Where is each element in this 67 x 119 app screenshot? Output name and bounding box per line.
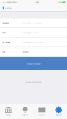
- button[interactable]: Oficinas: [0, 103, 17, 119]
- staticText: Ajustes: [56, 114, 62, 116]
- button[interactable]: Ajustes: [50, 103, 67, 119]
- staticText: Introduce tu usuario: [22, 22, 41, 24]
- staticText: ••••• Vodafone ES: [2, 1, 17, 3]
- staticText: Cajeros: [22, 114, 28, 116]
- button[interactable]: Cajeros: [17, 103, 34, 119]
- button[interactable]: Usuario: [0, 18, 67, 28]
- staticText: PIN: [2, 31, 5, 34]
- staticText: País: [2, 50, 5, 53]
- staticText: Usuario: [2, 22, 8, 24]
- button[interactable]: País: [0, 47, 67, 57]
- staticText: Introduce tu PIN: [22, 31, 38, 34]
- button[interactable]: Registrarse: [0, 57, 67, 70]
- button[interactable]: ¿Algún problema?: [0, 79, 67, 84]
- staticText: Tarjetas: [38, 114, 45, 116]
- staticText: Nº móvil: [2, 41, 9, 43]
- staticText: España: [22, 50, 28, 53]
- button[interactable]: Tarjetas: [33, 103, 50, 119]
- staticText: Introduce tu nº móvil: [22, 41, 42, 43]
- staticText: 100%: [58, 1, 62, 3]
- staticText: Oficinas: [5, 114, 11, 116]
- staticText: Ajustes: [5, 6, 12, 9]
- staticText: ¿Algún problema?: [25, 80, 42, 83]
- staticText: Registrarse: [27, 62, 40, 65]
- button[interactable]: PIN: [0, 28, 67, 37]
- button[interactable]: Ajustes: [0, 4, 12, 12]
- staticText: 14:32: [35, 1, 39, 3]
- button[interactable]: Nº móvil: [0, 37, 67, 47]
